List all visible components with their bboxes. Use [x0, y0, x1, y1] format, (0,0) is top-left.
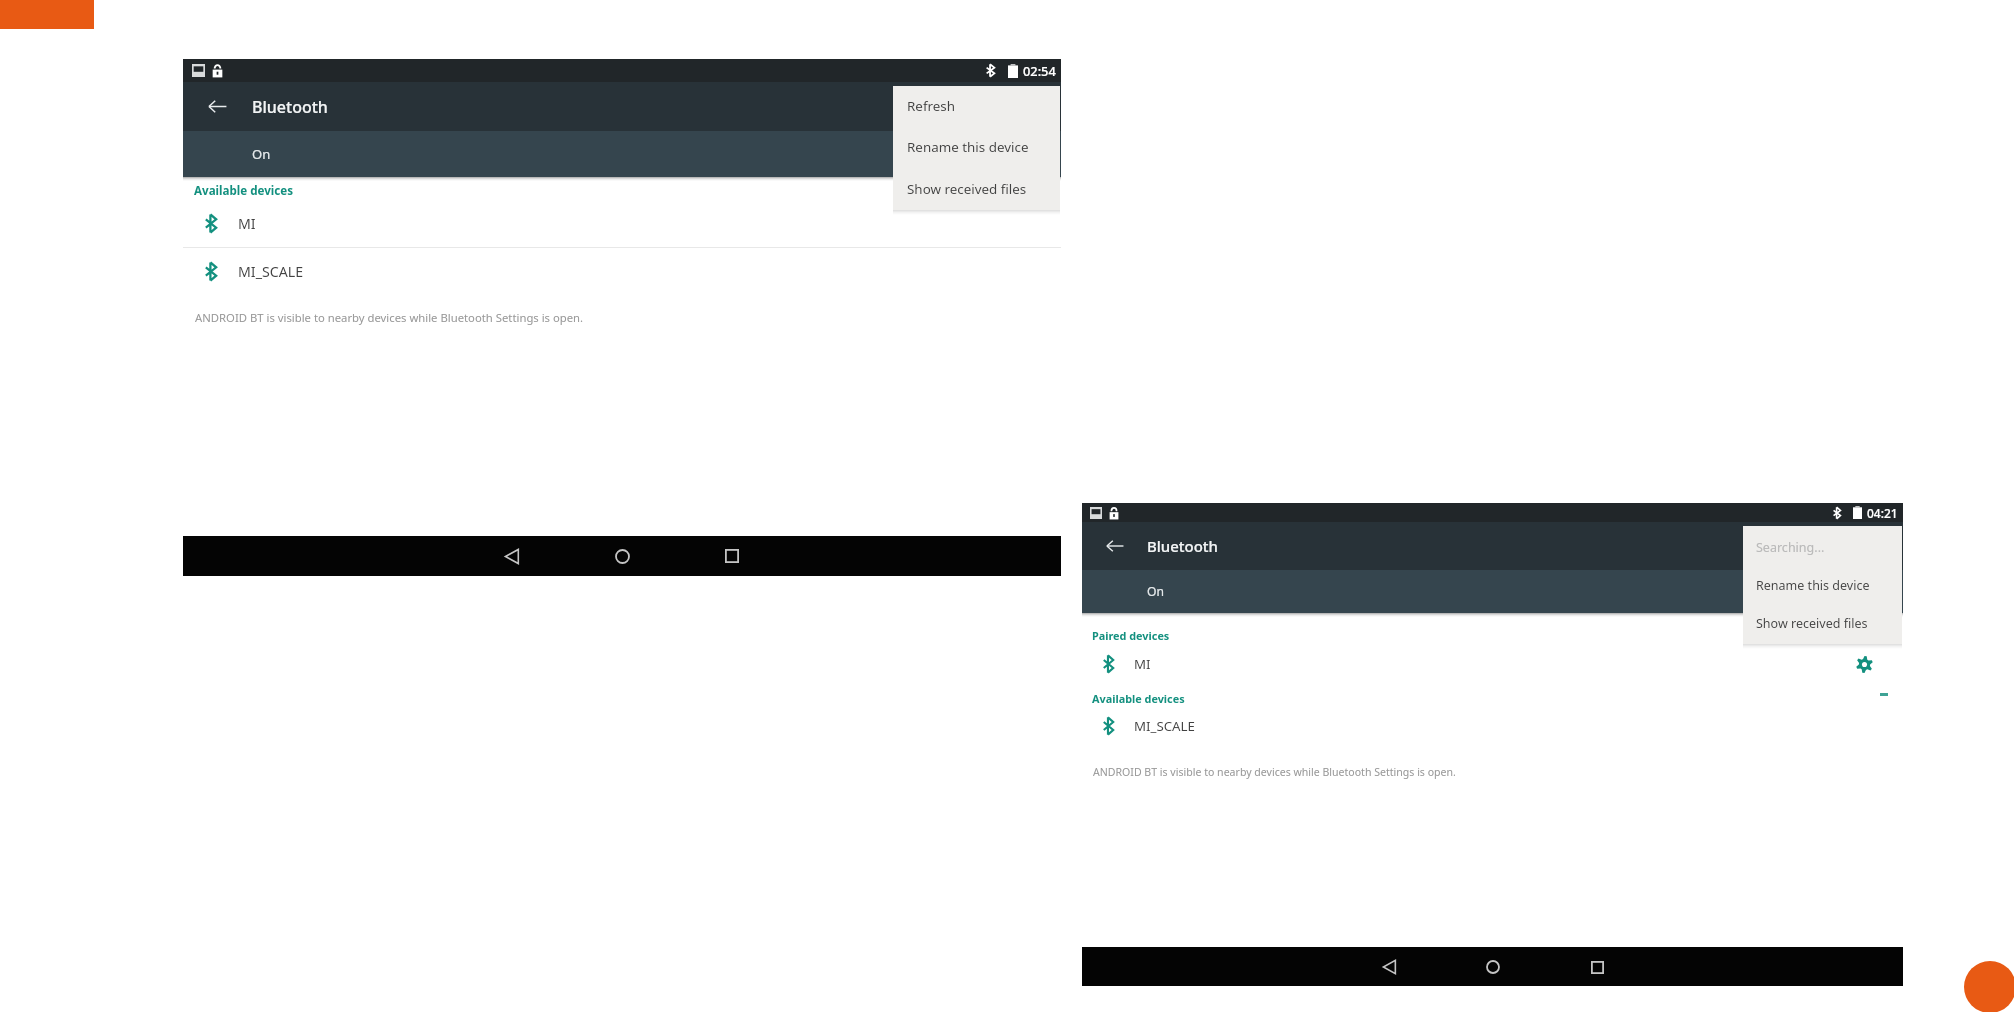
staticText: On	[252, 145, 271, 163]
staticText: Bluetooth	[252, 96, 328, 118]
button[interactable]: Navigate up	[1082, 522, 1147, 570]
button[interactable]: Navigate up	[183, 82, 252, 131]
button[interactable]: Device settings	[1846, 646, 1882, 682]
staticText: Refresh	[907, 97, 955, 115]
button[interactable]: Refresh	[893, 86, 1060, 126]
button[interactable]: Searching...	[1743, 526, 1902, 568]
staticText: MI	[238, 214, 256, 233]
button[interactable]: Recents	[719, 543, 745, 569]
staticText: Searching...	[1756, 539, 1825, 556]
button[interactable]: Rename this device	[893, 126, 1060, 168]
staticText: Rename this device	[907, 138, 1029, 156]
staticText: MI_SCALE	[1134, 717, 1195, 735]
button[interactable]: MI_SCALE	[183, 251, 1061, 291]
button[interactable]: On	[183, 131, 1061, 177]
staticText: Bluetooth	[1147, 536, 1218, 556]
button[interactable]: Back	[499, 543, 525, 569]
staticText: ANDROID BT is visible to nearby devices …	[1093, 765, 1456, 779]
button[interactable]: On	[1082, 570, 1903, 613]
staticText: Show received files	[1756, 615, 1868, 632]
staticText: 02:54	[1023, 62, 1056, 79]
staticText: Show received files	[907, 180, 1027, 198]
staticText: Rename this device	[1756, 577, 1870, 594]
staticText: Paired devices	[1092, 628, 1170, 643]
button[interactable]: Show received files	[893, 168, 1060, 210]
button[interactable]: Show received files	[1743, 602, 1902, 644]
staticText: MI_SCALE	[238, 262, 304, 281]
staticText: Available devices	[1092, 691, 1185, 706]
button[interactable]: MI	[183, 203, 1061, 243]
button[interactable]: Home	[609, 543, 635, 569]
staticText: ANDROID BT is visible to nearby devices …	[195, 310, 584, 325]
staticText: Available devices	[194, 183, 293, 199]
button[interactable]: Home	[1480, 954, 1506, 980]
button[interactable]: Rename this device	[1743, 568, 1902, 602]
staticText: 04:21	[1867, 505, 1898, 521]
button[interactable]: Back	[1376, 954, 1402, 980]
button[interactable]: Recents	[1584, 954, 1610, 980]
button[interactable]: MI	[1082, 644, 1903, 684]
button[interactable]: MI_SCALE	[1082, 706, 1903, 746]
staticText: MI	[1134, 655, 1151, 673]
staticText: On	[1147, 583, 1164, 600]
